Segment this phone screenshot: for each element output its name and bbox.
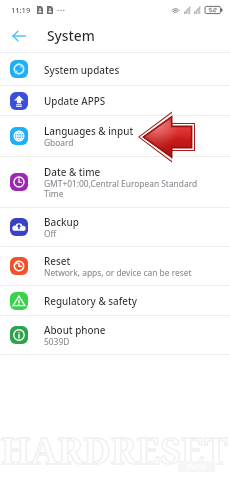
button[interactable]: Date & time bbox=[0, 157, 230, 207]
staticText: Reset bbox=[44, 254, 71, 267]
button[interactable]: Regulatory & safety bbox=[0, 286, 230, 315]
staticText: HARDRESET bbox=[1, 426, 228, 475]
staticText: Regulatory & safety bbox=[44, 294, 137, 307]
button[interactable]: Reset bbox=[0, 247, 230, 285]
staticText: Date & time bbox=[44, 165, 101, 178]
staticText: Network, apps, or device can be reset bbox=[44, 267, 192, 278]
button[interactable]: About phone bbox=[0, 316, 230, 354]
staticText: 5039D bbox=[44, 336, 70, 347]
staticText: Backup bbox=[44, 215, 79, 228]
button[interactable]: Update APPS bbox=[0, 86, 230, 115]
staticText: Languages & input bbox=[44, 124, 134, 137]
staticText: Gboard bbox=[44, 137, 74, 148]
staticText: Off bbox=[44, 228, 57, 239]
button[interactable]: System updates bbox=[0, 53, 230, 85]
button[interactable]: Backup bbox=[0, 208, 230, 246]
staticText: About phone bbox=[44, 323, 106, 336]
button[interactable]: Languages & input bbox=[0, 116, 230, 156]
staticText: 11:19 bbox=[11, 5, 31, 15]
button[interactable]: Back bbox=[0, 19, 38, 52]
staticText: System updates bbox=[44, 63, 120, 76]
staticText: GMT+01:00,Central European Standard Time bbox=[44, 178, 213, 199]
staticText: System bbox=[47, 26, 95, 45]
staticText: Update APPS bbox=[44, 94, 106, 107]
